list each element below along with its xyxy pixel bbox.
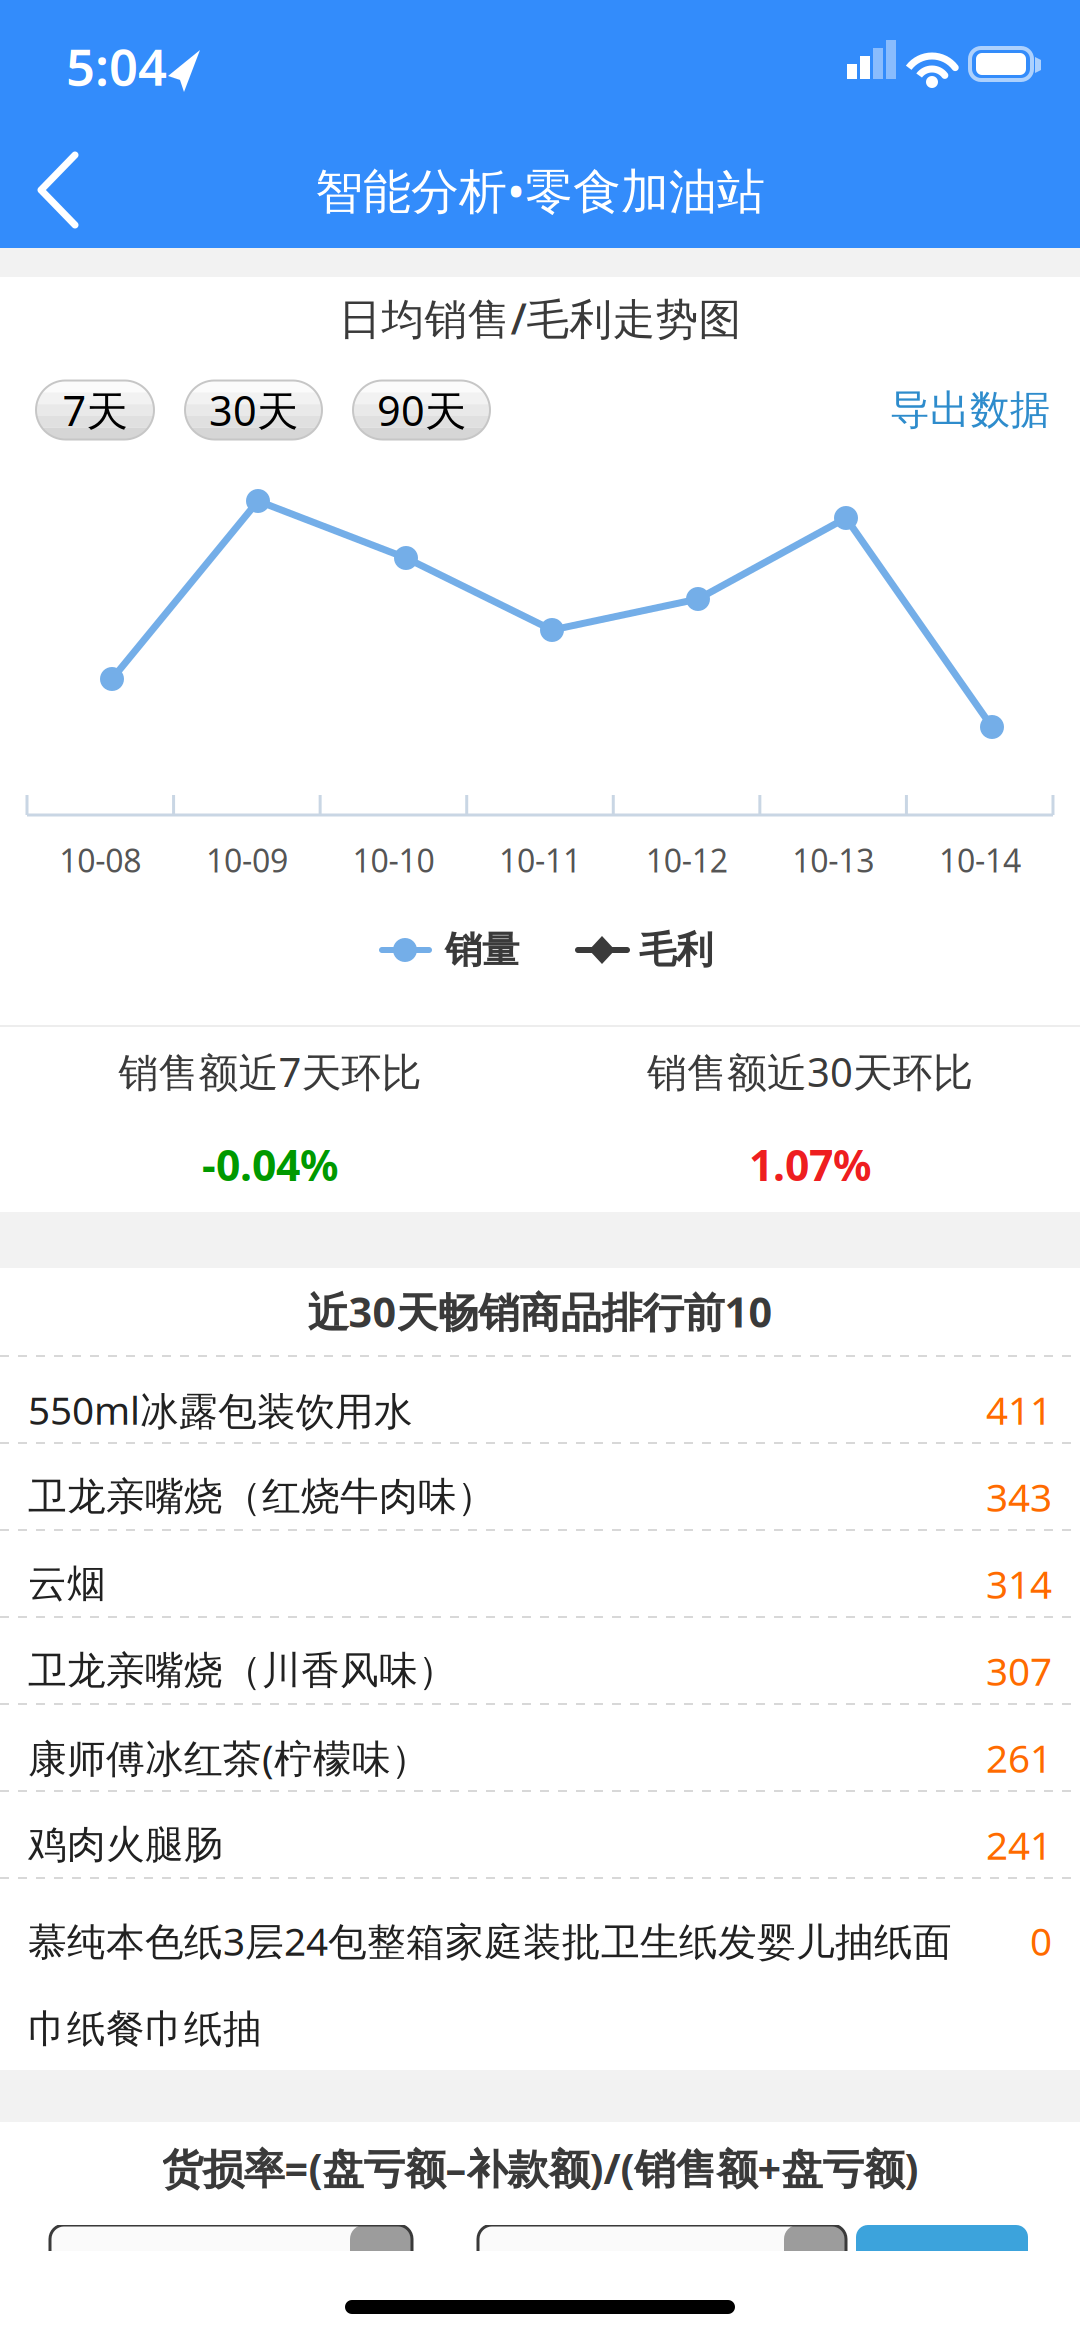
staticText: 10-14 [939,839,1021,881]
staticText: 307 [986,1645,1052,1696]
staticText: 241 [986,1819,1052,1870]
staticText: 5:04 [66,32,167,100]
staticText: 康师傅冰红茶(柠檬味） [28,1732,430,1783]
button[interactable]: 卫龙亲嘴烧（川香风味） [0,1618,1080,1705]
staticText: 411 [986,1384,1052,1435]
staticText: 卫龙亲嘴烧（川香风味） [28,1647,457,1694]
button[interactable]: 康师傅冰红茶(柠檬味） [0,1705,1080,1792]
staticText: 货损率=(盘亏额–补款额)/(销售额+盘亏额) [161,2141,918,2195]
staticText: 343 [986,1471,1052,1522]
staticText: 0 [1030,1915,1052,1966]
staticText: 日均销售/毛利走势图 [338,290,741,346]
staticText: 近30天畅销商品排行前10 [307,1284,772,1339]
staticText: 10-08 [59,839,141,881]
staticText: 30天 [209,383,298,437]
button[interactable]: 90天 [353,380,490,439]
staticText: 毛利 [639,927,713,973]
staticText: 261 [986,1732,1052,1783]
staticText: 10-10 [352,839,434,881]
staticText: 卫龙亲嘴烧（红烧牛肉味） [28,1473,496,1520]
staticText: 导出数据 [890,385,1050,434]
staticText: 7天 [62,383,127,437]
button[interactable]: 30天 [185,380,322,439]
button[interactable]: 鸡肉火腿肠 [0,1792,1080,1879]
staticText: 10-13 [792,839,874,881]
staticText: 10-09 [206,839,288,881]
staticText: 1.07% [749,1136,871,1193]
staticText: 90天 [377,383,466,437]
button[interactable]: 云烟 [0,1531,1080,1618]
button[interactable]: 550ml冰露包装饮用水 [0,1357,1080,1444]
button[interactable]: Back [0,132,120,248]
button[interactable]: Input [50,2225,412,2295]
staticText: 慕纯本色纸3层24包整箱家庭装批卫生纸发婴儿抽纸面巾纸餐巾纸抽 [28,1915,952,2053]
staticText: 314 [986,1558,1052,1609]
staticText: 智能分析•零食加油站 [315,158,765,222]
staticText: -0.04% [202,1136,338,1193]
button[interactable]: 7天 [36,380,154,439]
staticText: 10-12 [646,839,728,881]
button[interactable]: 卫龙亲嘴烧（红烧牛肉味） [0,1444,1080,1531]
staticText: 销售额近7天环比 [118,1045,421,1098]
button[interactable]: Submit [856,2225,1028,2295]
staticText: 鸡肉火腿肠 [28,1821,223,1868]
staticText: 销量 [445,927,519,973]
button[interactable]: 导出数据 [890,381,1050,439]
button[interactable]: Input [478,2225,846,2295]
staticText: 销售额近30天环比 [647,1045,973,1098]
staticText: 10-11 [499,839,581,881]
staticText: 云烟 [28,1560,106,1607]
staticText: 550ml冰露包装饮用水 [28,1384,413,1435]
